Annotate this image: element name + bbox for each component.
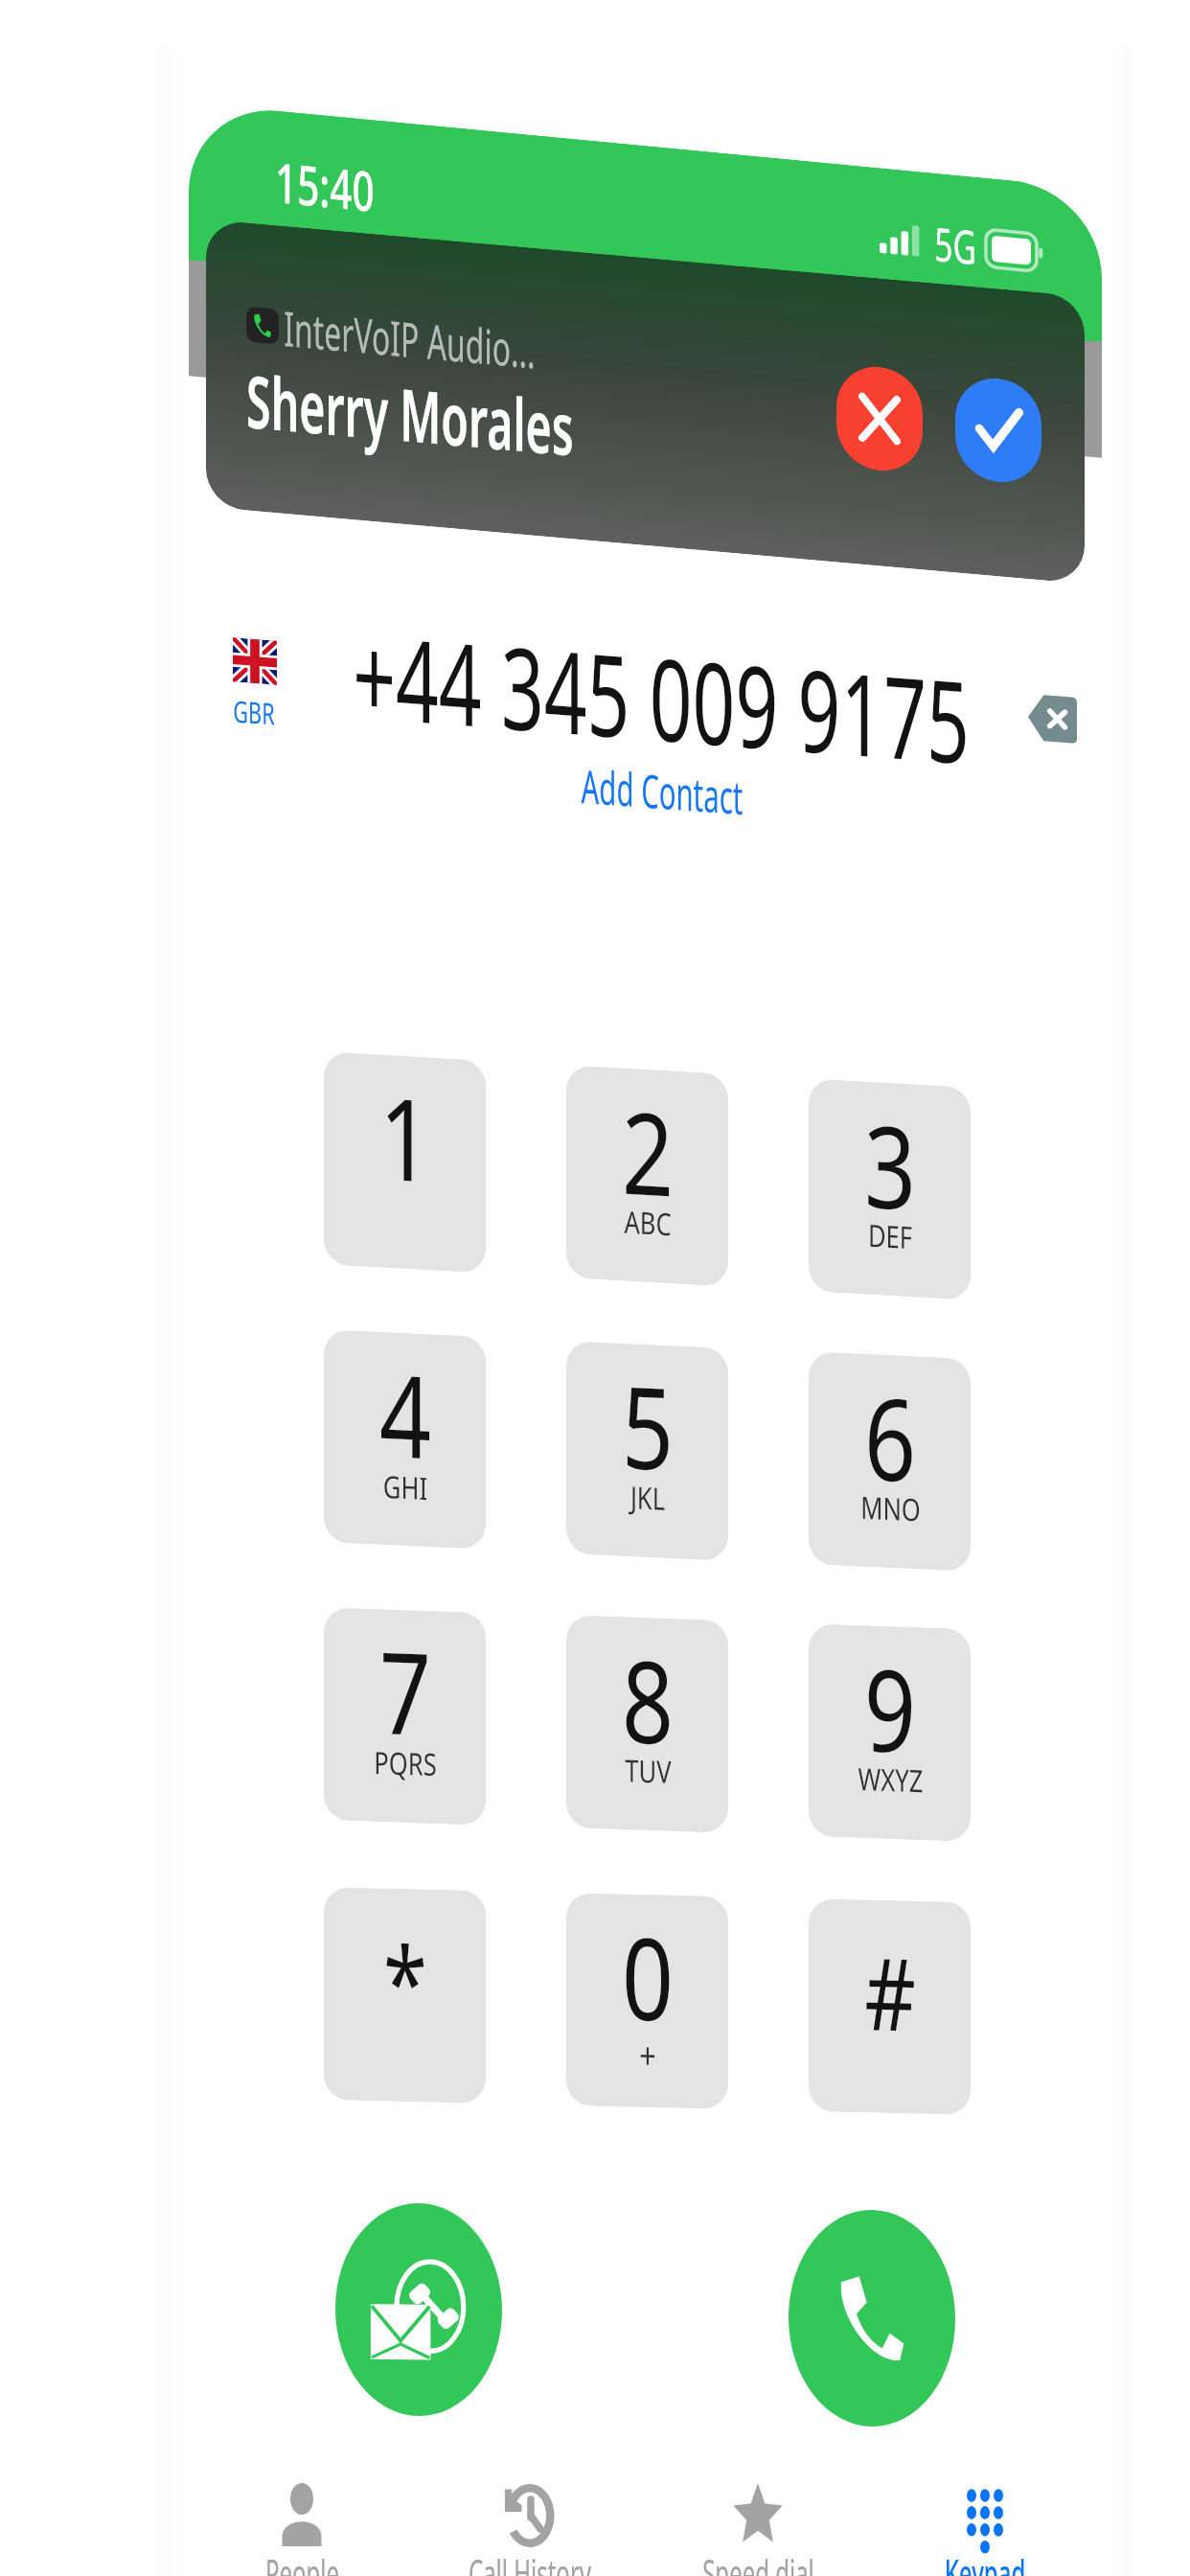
button[interactable] bbox=[566, 1345, 728, 1557]
staticText: * bbox=[383, 1913, 428, 2049]
button[interactable]: Accept call bbox=[955, 379, 1041, 482]
staticText: +44 345 009 9175 bbox=[353, 620, 970, 774]
button[interactable]: Call History bbox=[416, 2463, 644, 2576]
button[interactable]: Backspace bbox=[1028, 696, 1077, 742]
staticText: TUV bbox=[625, 1750, 672, 1792]
staticText: 9 bbox=[864, 1631, 916, 1785]
button[interactable] bbox=[809, 1355, 971, 1568]
button[interactable] bbox=[566, 1069, 728, 1282]
staticText: Sherry Morales bbox=[246, 351, 574, 448]
staticText: 5G bbox=[934, 212, 976, 274]
button[interactable]: People bbox=[188, 2463, 416, 2576]
staticText: ABC bbox=[624, 1202, 671, 1244]
button[interactable]: Speed dial bbox=[644, 2464, 872, 2576]
button[interactable] bbox=[324, 1889, 486, 2102]
staticText: 6 bbox=[864, 1360, 916, 1514]
button[interactable]: Keypad bbox=[871, 2464, 1099, 2576]
staticText: MNO bbox=[860, 1487, 921, 1529]
staticText: Speed dial bbox=[702, 2546, 814, 2576]
staticText: 0 bbox=[622, 1899, 674, 2054]
staticText: 5 bbox=[622, 1348, 674, 1503]
staticText: 1 bbox=[379, 1060, 431, 1214]
staticText: 2 bbox=[622, 1074, 674, 1229]
button[interactable] bbox=[324, 1056, 486, 1269]
staticText: Keypad bbox=[944, 2546, 1026, 2576]
staticText: People bbox=[265, 2546, 339, 2576]
button[interactable] bbox=[570, 767, 752, 820]
button[interactable]: Voicemail bbox=[335, 2203, 502, 2416]
button[interactable] bbox=[566, 1618, 728, 1830]
staticText: 7 bbox=[379, 1614, 431, 1768]
staticText: # bbox=[864, 1924, 916, 2060]
staticText: WXYZ bbox=[858, 1759, 923, 1801]
staticText: 15:40 bbox=[275, 144, 374, 218]
staticText: DEF bbox=[868, 1215, 912, 1257]
button[interactable]: Call bbox=[789, 2210, 955, 2426]
button[interactable] bbox=[809, 1626, 971, 1839]
staticText: 8 bbox=[622, 1622, 674, 1777]
staticText: 4 bbox=[379, 1337, 431, 1491]
button[interactable]: Decline call bbox=[836, 367, 923, 471]
staticText: Add Contact bbox=[581, 760, 743, 822]
staticText: PQRS bbox=[374, 1742, 437, 1784]
button[interactable] bbox=[809, 1083, 971, 1296]
button[interactable] bbox=[809, 1900, 971, 2113]
staticText: 3 bbox=[864, 1088, 916, 1242]
button[interactable] bbox=[324, 1610, 486, 1823]
button[interactable] bbox=[566, 1895, 728, 2107]
staticText: GHI bbox=[383, 1466, 428, 1508]
button[interactable] bbox=[206, 258, 1085, 545]
staticText: JKL bbox=[630, 1477, 665, 1519]
staticText: + bbox=[639, 2030, 656, 2080]
button[interactable] bbox=[324, 1333, 486, 1546]
staticText: GBR bbox=[233, 692, 275, 732]
staticText: InterVoIP Audio... bbox=[284, 295, 535, 360]
staticText: Call History bbox=[468, 2546, 591, 2576]
